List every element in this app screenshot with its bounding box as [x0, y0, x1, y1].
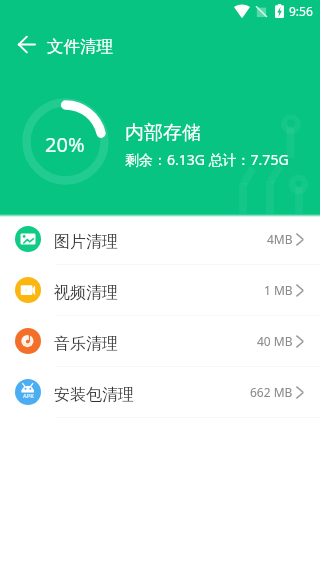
- button[interactable]: 图片清理: [0, 214, 320, 265]
- staticText: 9:56: [289, 3, 313, 19]
- staticText: 视频清理: [54, 283, 118, 303]
- staticText: 音乐清理: [54, 334, 118, 354]
- staticText: 40 MB: [257, 333, 293, 349]
- button[interactable]: APK: [0, 367, 320, 418]
- staticText: APK: [23, 392, 34, 399]
- staticText: 662 MB: [250, 384, 293, 400]
- staticText: 图片清理: [54, 232, 118, 252]
- staticText: 内部存储: [125, 121, 201, 145]
- staticText: 4MB: [267, 231, 293, 247]
- staticText: 20%: [45, 131, 85, 158]
- button[interactable]: 音乐清理: [0, 316, 320, 367]
- staticText: 1 MB: [264, 282, 293, 298]
- button[interactable]: 视频清理: [0, 265, 320, 316]
- staticText: 文件清理: [47, 36, 113, 57]
- button[interactable]: Back: [10, 28, 42, 60]
- staticText: 安装包清理: [54, 385, 134, 405]
- staticText: 剩余：6.13G 总计：7.75G: [125, 150, 289, 169]
